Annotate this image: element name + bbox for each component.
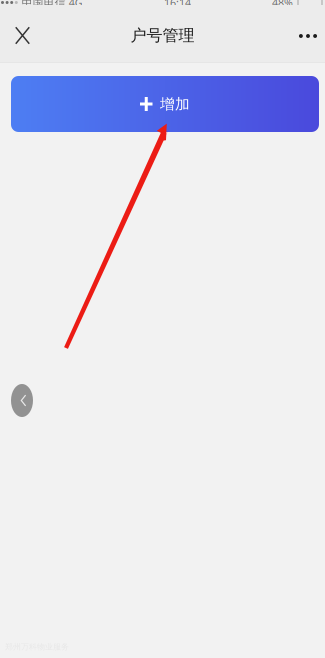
button[interactable]: 更多	[286, 11, 325, 61]
staticText: 增加	[160, 95, 190, 113]
button[interactable]: 关闭	[0, 10, 44, 60]
staticText: 户号管理	[130, 26, 194, 45]
staticText: 16:14	[164, 0, 191, 10]
staticText: 中国电信 4G	[22, 0, 83, 10]
staticText: 48%	[272, 0, 293, 10]
button[interactable]: 增加	[11, 76, 319, 132]
button[interactable]: 返回	[11, 384, 33, 417]
